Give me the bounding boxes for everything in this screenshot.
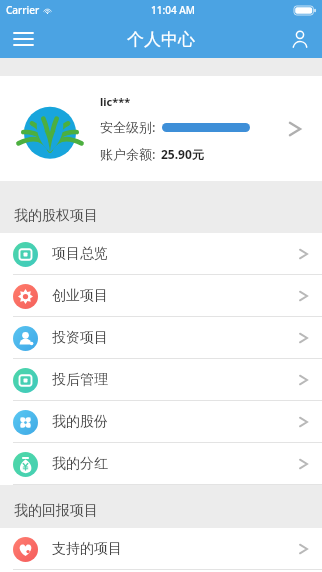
staticText: 项目总览 <box>52 245 108 263</box>
staticText: 我的股权项目 <box>14 207 98 225</box>
staticText: 创业项目 <box>52 287 108 305</box>
staticText: 投资项目 <box>52 329 108 347</box>
staticText: Carrier <box>6 3 40 17</box>
button[interactable]: 项目总览 <box>0 233 322 275</box>
staticText: 投后管理 <box>52 371 108 389</box>
button[interactable]: 我的股份 <box>0 401 322 443</box>
staticText: 25.90元 <box>161 146 204 162</box>
staticText: 我的回报项目 <box>14 502 98 520</box>
staticText: 安全级别: <box>100 118 156 136</box>
button[interactable]: 支持的项目 <box>0 528 322 570</box>
staticText: 11:04 AM <box>151 3 195 17</box>
button[interactable]: 投资项目 <box>0 317 322 359</box>
button[interactable]: 投后管理 <box>0 359 322 401</box>
button[interactable]: Profile <box>278 20 322 58</box>
staticText: 个人中心 <box>127 29 195 50</box>
staticText: 我的股份 <box>52 413 108 431</box>
staticText: 支持的项目 <box>52 540 122 558</box>
staticText: 我的分红 <box>52 455 108 473</box>
button[interactable]: 我的分红 <box>0 443 322 485</box>
button[interactable]: 创业项目 <box>0 275 322 317</box>
button[interactable]: lic*** <box>0 76 322 181</box>
staticText: lic*** <box>100 94 131 109</box>
staticText: 账户余额: <box>100 145 156 163</box>
button[interactable]: Menu <box>0 20 46 58</box>
